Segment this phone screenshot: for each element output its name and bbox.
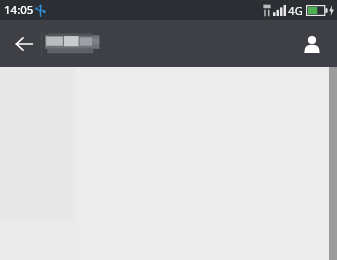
button[interactable]: Back: [4, 24, 44, 64]
staticText: 14:05: [4, 2, 34, 18]
button[interactable]: Contact: [291, 23, 333, 65]
staticText: 4G: [288, 3, 303, 18]
button[interactable]: [45, 33, 101, 55]
